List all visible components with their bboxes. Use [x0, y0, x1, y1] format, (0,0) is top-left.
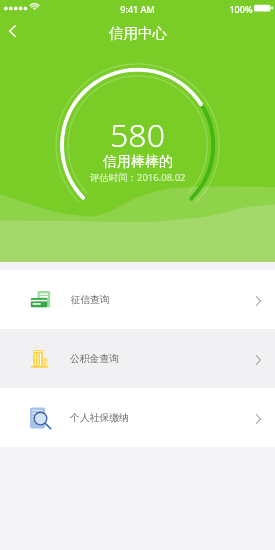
staticText: 征信查询: [70, 294, 110, 306]
button[interactable]: 公积金查询: [0, 329, 275, 388]
staticText: 580: [110, 113, 165, 157]
button[interactable]: 征信查询: [0, 270, 275, 329]
button[interactable]: Back: [0, 14, 34, 48]
staticText: 公积金查询: [70, 353, 119, 365]
button[interactable]: 个人社保缴纳: [0, 388, 275, 447]
staticText: 9:41 AM: [120, 3, 155, 15]
staticText: 评估时间：2016.08.02: [89, 171, 186, 184]
staticText: 个人社保缴纳: [70, 412, 129, 424]
staticText: 信用棒棒的: [103, 153, 173, 171]
staticText: 信用中心: [109, 24, 167, 42]
staticText: 100%: [229, 3, 253, 15]
